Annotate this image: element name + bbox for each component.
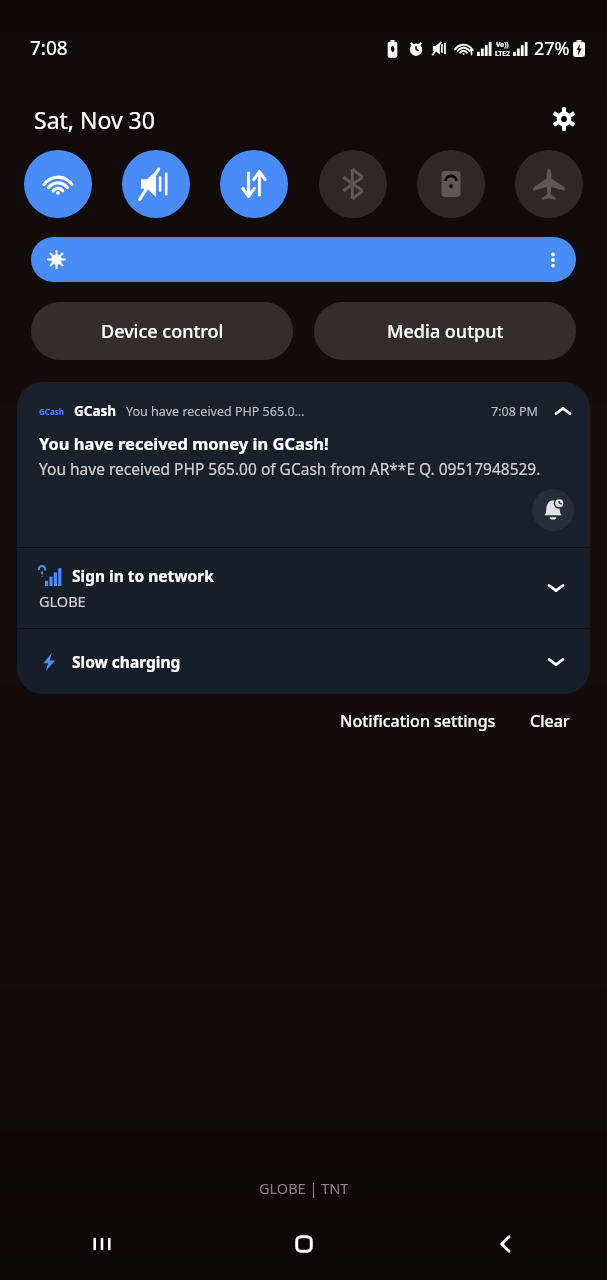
button[interactable]: Slow charging xyxy=(17,629,590,694)
staticText: Media output xyxy=(387,319,504,344)
staticText: GCash xyxy=(39,406,64,417)
button[interactable]: Snooze notification xyxy=(532,489,574,531)
button[interactable]: Mobile data xyxy=(220,150,288,218)
button[interactable]: Clear xyxy=(524,702,576,740)
staticText: Slow charging xyxy=(72,651,181,672)
button[interactable]: Mute xyxy=(122,150,190,218)
other: Collapse xyxy=(552,400,574,422)
staticText: Sign in to network xyxy=(72,565,214,586)
button[interactable]: Notification settings xyxy=(334,702,502,740)
button[interactable]: Settings xyxy=(543,98,585,140)
button[interactable]: Home xyxy=(203,1208,405,1280)
button[interactable]: Lock xyxy=(417,150,485,218)
button[interactable]: GCash xyxy=(17,382,590,547)
staticText: You have received PHP 565.00 of GCash fr… xyxy=(126,403,308,420)
button[interactable]: Wi-Fi xyxy=(24,150,92,218)
other: Expand xyxy=(545,651,567,673)
staticText: GLOBE xyxy=(39,591,86,611)
other: Expand xyxy=(545,577,567,599)
button[interactable] xyxy=(31,237,576,282)
staticText: 7:08 PM xyxy=(491,403,538,420)
button[interactable]: Media output xyxy=(314,302,576,360)
staticText: Sat, Nov 30 xyxy=(34,104,155,135)
button[interactable]: Bluetooth xyxy=(319,150,387,218)
button[interactable]: Recents xyxy=(0,1208,203,1280)
staticText: 7:08 xyxy=(30,35,68,61)
staticText: GLOBE | TNT xyxy=(259,1178,349,1198)
staticText: Device control xyxy=(101,319,224,344)
staticText: Clear xyxy=(530,710,570,732)
staticText: You have received PHP 565.00 of GCash fr… xyxy=(39,458,541,479)
button[interactable]: Back xyxy=(405,1208,607,1280)
staticText: Vo)) xyxy=(496,40,509,49)
staticText: You have received money in GCash! xyxy=(39,432,329,454)
staticText: Notification settings xyxy=(340,710,496,732)
staticText: LTE2 xyxy=(495,49,510,58)
staticText: 27% xyxy=(534,36,570,61)
staticText: GCash xyxy=(74,402,117,420)
button[interactable]: Airplane mode xyxy=(515,150,583,218)
button[interactable]: Device control xyxy=(31,302,293,360)
button[interactable]: Sign in to network xyxy=(17,548,590,628)
